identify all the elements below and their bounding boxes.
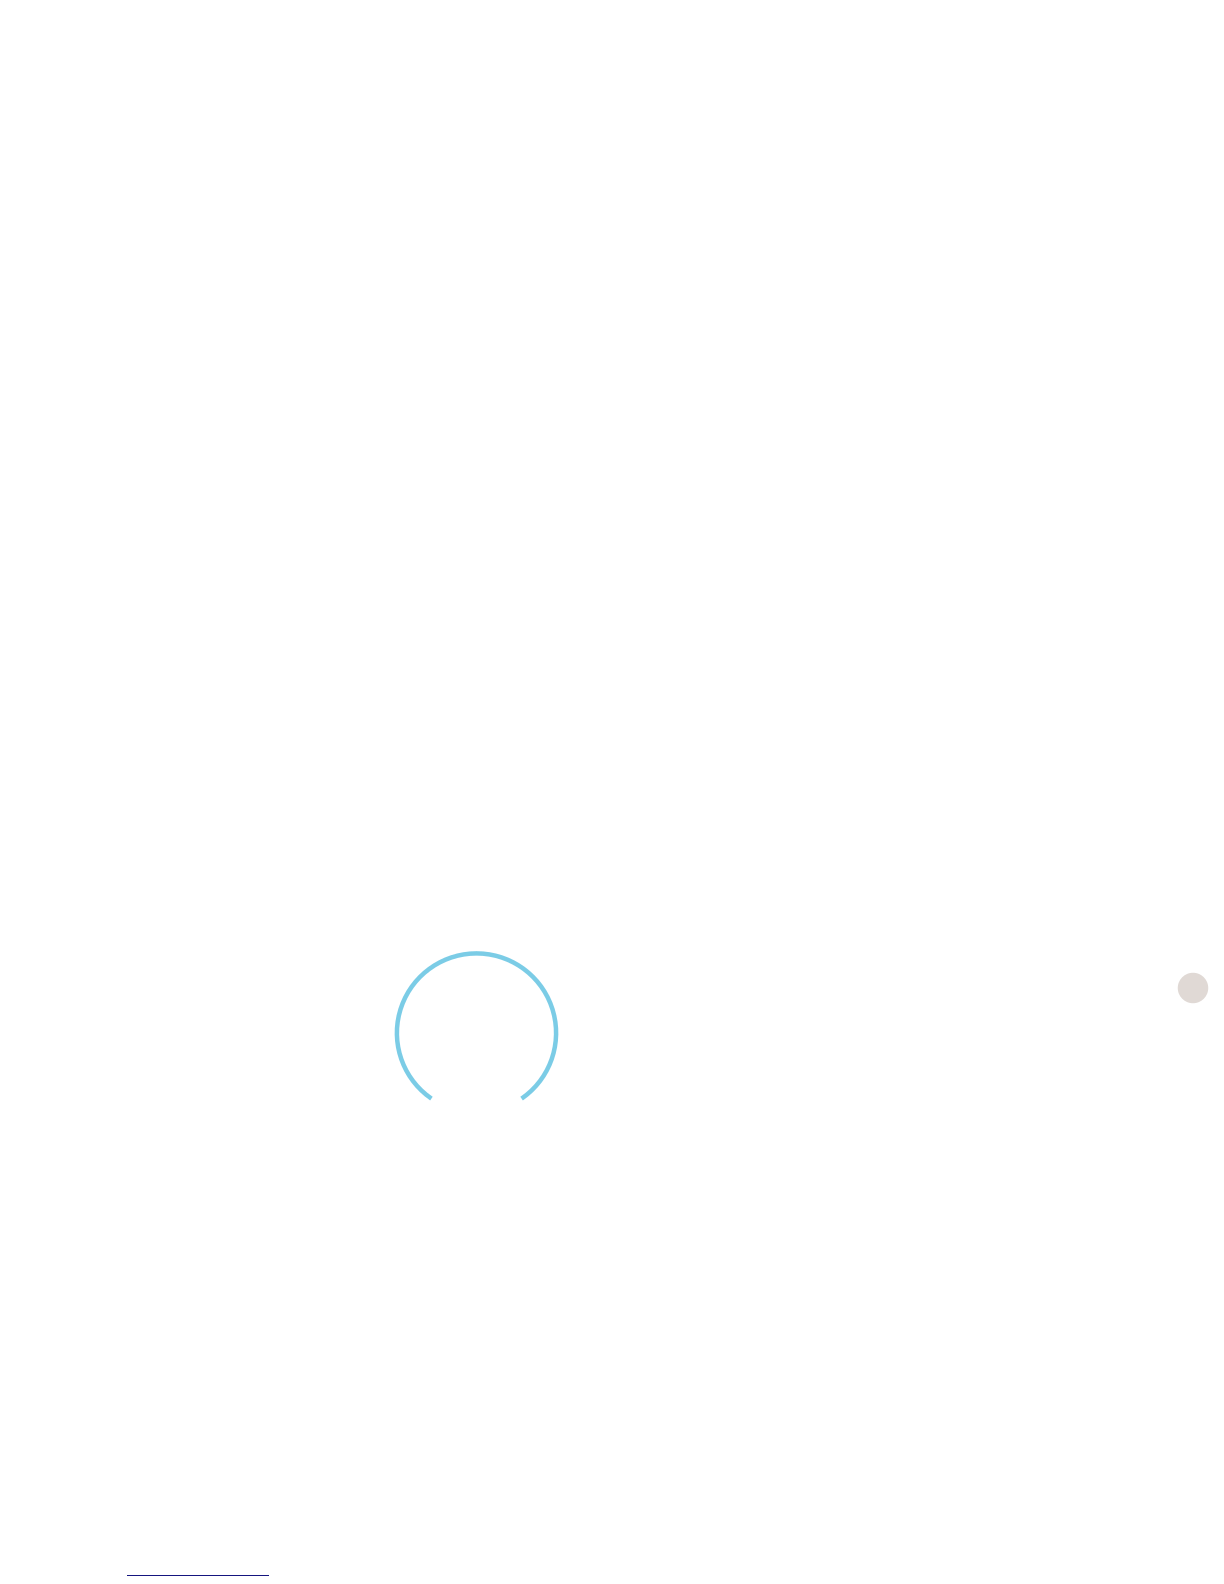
staticText: Terms of Service bbox=[127, 1559, 239, 1579]
button[interactable]: Terms of Service bbox=[127, 1563, 269, 1576]
